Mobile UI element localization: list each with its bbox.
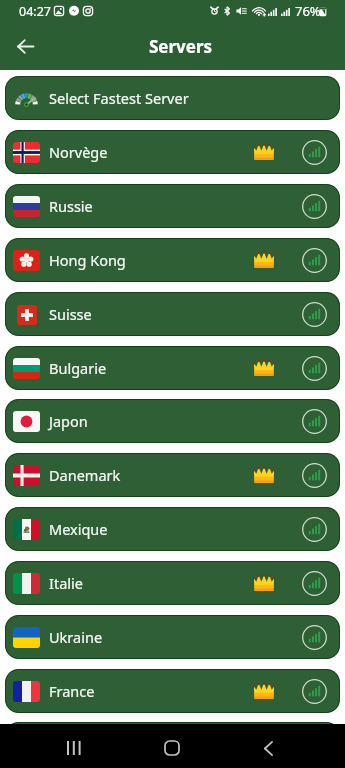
staticText: 76% bbox=[295, 2, 321, 20]
staticText: Bulgarie bbox=[49, 358, 107, 378]
staticText: Servers bbox=[149, 35, 213, 58]
button[interactable] bbox=[5, 399, 340, 443]
button[interactable] bbox=[5, 130, 340, 174]
staticText: Select Fastest Server bbox=[49, 88, 189, 108]
staticText: Hong Kong bbox=[49, 250, 126, 270]
staticText: Ukraine bbox=[49, 627, 103, 647]
staticText: France bbox=[49, 681, 95, 701]
staticText: Italie bbox=[49, 573, 83, 593]
button[interactable] bbox=[5, 292, 340, 336]
button[interactable] bbox=[5, 507, 340, 551]
staticText: 04:27 bbox=[19, 3, 51, 20]
button[interactable] bbox=[5, 184, 340, 228]
button[interactable]: Back bbox=[250, 730, 286, 766]
button[interactable]: Recent apps bbox=[56, 730, 92, 766]
button[interactable]: Back bbox=[9, 30, 41, 62]
button[interactable] bbox=[5, 722, 340, 766]
button[interactable] bbox=[5, 453, 340, 497]
staticText: Norvège bbox=[49, 142, 108, 162]
button[interactable] bbox=[5, 561, 340, 605]
button[interactable] bbox=[5, 669, 340, 713]
button[interactable] bbox=[5, 76, 340, 120]
button[interactable] bbox=[5, 615, 340, 659]
staticText: Japon bbox=[49, 411, 88, 431]
button[interactable] bbox=[5, 238, 340, 282]
staticText: Danemark bbox=[49, 465, 121, 485]
staticText: Mexique bbox=[49, 519, 108, 539]
staticText: Russie bbox=[49, 196, 93, 216]
button[interactable] bbox=[5, 346, 340, 390]
staticText: Suisse bbox=[49, 304, 92, 324]
button[interactable]: Home bbox=[154, 730, 190, 766]
